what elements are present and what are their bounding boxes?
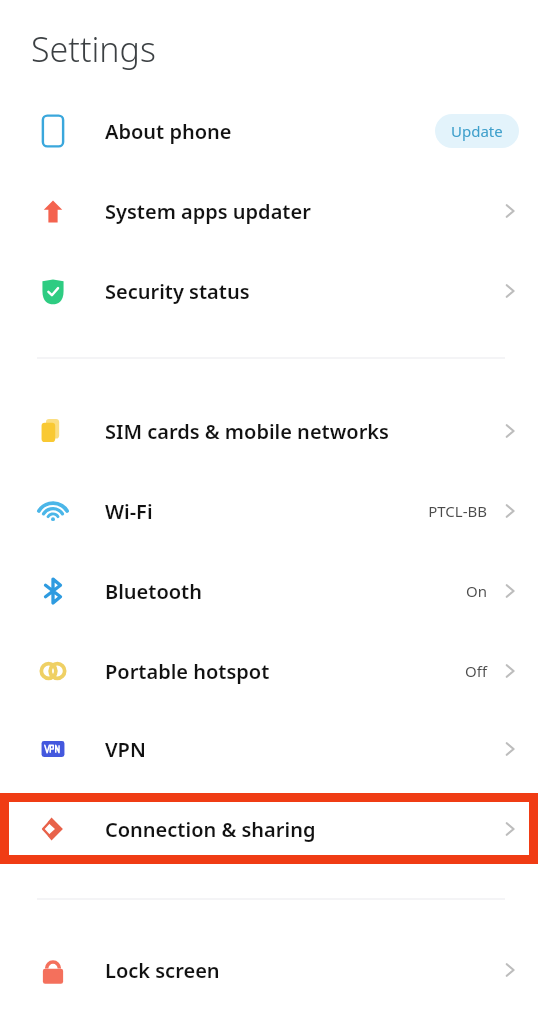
- staticText: VPN: [105, 736, 146, 763]
- staticText: Bluetooth: [105, 578, 202, 605]
- staticText: About phone: [105, 118, 232, 145]
- other: Security status: [31, 269, 75, 313]
- staticText: Security status: [105, 278, 250, 305]
- staticText: SIM cards & mobile networks: [105, 418, 389, 445]
- button[interactable]: Security status: [0, 251, 541, 331]
- other: Lock screen: [31, 948, 75, 992]
- staticText: PTCL-BB: [428, 501, 487, 521]
- staticText: On: [466, 581, 487, 601]
- other: Wi-Fi: [31, 489, 75, 533]
- staticText: Update: [451, 121, 503, 141]
- button[interactable]: SIM cards and mobile networks: [0, 391, 541, 471]
- button[interactable]: Connection and sharing: [0, 789, 541, 869]
- staticText: Settings: [31, 26, 156, 72]
- other: VPN: [31, 727, 75, 771]
- staticText: Portable hotspot: [105, 658, 270, 685]
- button[interactable]: Bluetooth: [0, 551, 541, 631]
- other: About phone: [31, 109, 75, 153]
- staticText: Wi-Fi: [105, 498, 153, 525]
- staticText: Lock screen: [105, 957, 220, 984]
- other: Portable hotspot: [31, 649, 75, 693]
- button[interactable]: Update: [435, 114, 519, 148]
- other: Connection and sharing: [31, 807, 75, 851]
- staticText: System apps updater: [105, 198, 311, 225]
- other: Bluetooth: [31, 569, 75, 613]
- staticText: Off: [464, 661, 487, 681]
- other: SIM cards and mobile networks: [31, 409, 75, 453]
- button[interactable]: VPN: [0, 709, 541, 789]
- button[interactable]: Portable hotspot: [0, 631, 541, 711]
- button[interactable]: Lock screen: [0, 930, 541, 1010]
- button[interactable]: Wi-Fi: [0, 471, 541, 551]
- other: System apps updater: [31, 189, 75, 233]
- button[interactable]: System apps updater: [0, 171, 541, 251]
- button[interactable]: About phone: [0, 91, 541, 171]
- staticText: Connection & sharing: [105, 816, 316, 843]
